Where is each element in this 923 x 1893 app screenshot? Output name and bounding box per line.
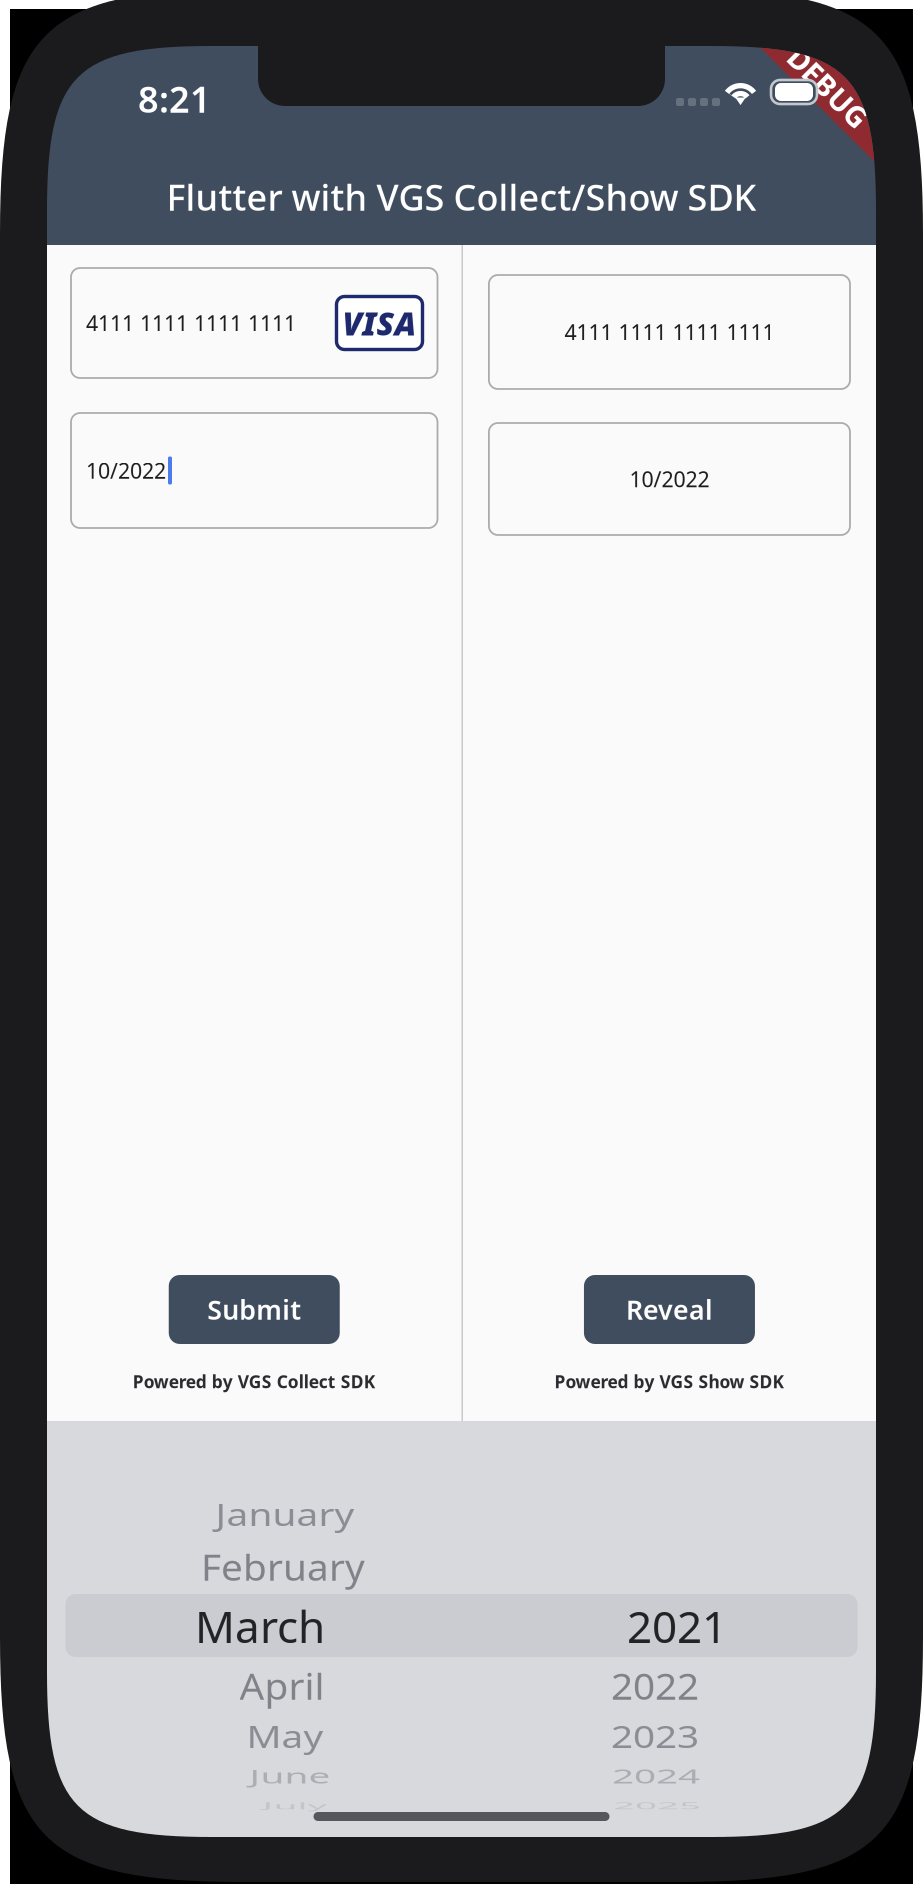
- button[interactable]: Reveal: [584, 1275, 755, 1344]
- staticText: January: [215, 1488, 354, 1540]
- staticText: April: [239, 1660, 324, 1711]
- staticText: Flutter with VGS Collect/Show SDK: [166, 173, 756, 221]
- staticText: Submit: [207, 1292, 301, 1327]
- staticText: March: [195, 1597, 325, 1655]
- staticText: February: [201, 1541, 365, 1592]
- staticText: 4111 1111 1111 1111: [564, 318, 774, 346]
- staticText: 2023: [611, 1710, 699, 1762]
- staticText: 2022: [611, 1660, 699, 1711]
- staticText: DEBUG: [777, 70, 877, 109]
- staticText: 2024: [612, 1750, 700, 1802]
- staticText: June: [249, 1750, 330, 1802]
- staticText: May: [246, 1710, 323, 1762]
- staticText: 2021: [627, 1597, 727, 1655]
- staticText: VISA: [342, 302, 416, 344]
- staticText: Powered by VGS Show SDK: [554, 1370, 784, 1393]
- staticText: 4111 1111 1111 1111: [86, 309, 296, 337]
- staticText: Reveal: [626, 1292, 713, 1327]
- staticText: 10/2022: [629, 465, 709, 493]
- staticText: 8:21: [138, 75, 211, 123]
- staticText: 10/2022: [86, 456, 166, 485]
- staticText: July: [262, 1780, 327, 1832]
- staticText: 2025: [613, 1780, 701, 1832]
- staticText: Powered by VGS Collect SDK: [133, 1370, 376, 1393]
- button[interactable]: Submit: [169, 1275, 340, 1344]
